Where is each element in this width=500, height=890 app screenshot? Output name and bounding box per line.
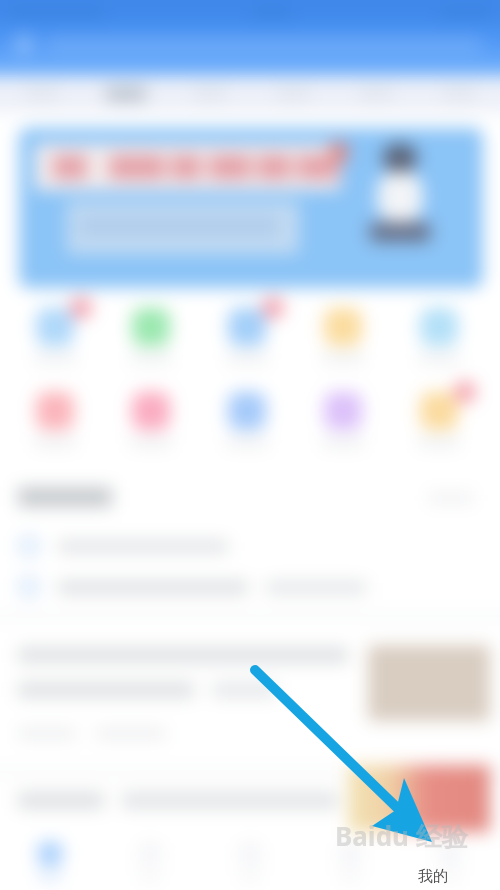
button[interactable] xyxy=(417,76,500,112)
button[interactable] xyxy=(324,392,362,430)
button[interactable] xyxy=(18,534,418,558)
button[interactable] xyxy=(18,575,458,599)
button[interactable] xyxy=(132,392,170,430)
staticText: Baidu 经验 xyxy=(335,818,468,854)
button[interactable] xyxy=(228,392,266,430)
button[interactable]: Scan xyxy=(14,34,34,54)
staticText: 我的 xyxy=(418,867,448,886)
button[interactable] xyxy=(228,308,266,346)
button[interactable] xyxy=(420,392,458,430)
button[interactable] xyxy=(132,308,170,346)
button[interactable]: Mine xyxy=(400,832,500,890)
button[interactable]: Home xyxy=(0,832,100,890)
button[interactable] xyxy=(251,76,334,112)
button[interactable] xyxy=(46,37,482,52)
button[interactable] xyxy=(324,308,362,346)
button[interactable] xyxy=(0,776,500,832)
button[interactable]: Discover xyxy=(300,832,400,890)
button[interactable] xyxy=(36,308,74,346)
button[interactable] xyxy=(168,76,251,112)
button[interactable] xyxy=(420,308,458,346)
button[interactable] xyxy=(36,392,74,430)
button[interactable] xyxy=(0,620,500,770)
button[interactable] xyxy=(19,128,483,288)
button[interactable] xyxy=(84,76,168,112)
button[interactable] xyxy=(334,76,417,112)
button[interactable] xyxy=(0,76,84,112)
